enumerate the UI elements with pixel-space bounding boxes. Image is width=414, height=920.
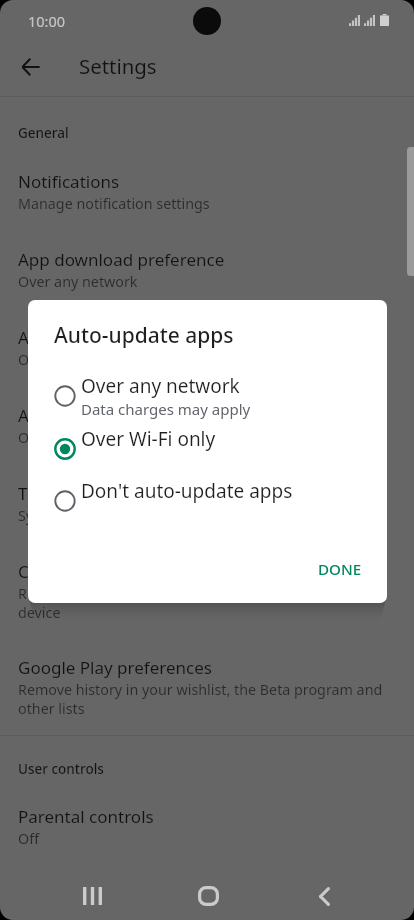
button[interactable]: Themes	[0, 465, 414, 543]
button[interactable]: Back	[300, 872, 348, 920]
staticText: Auto-update apps	[18, 326, 161, 349]
staticText: Themes	[18, 482, 82, 505]
staticText: Off	[18, 829, 40, 848]
staticText: User controls	[18, 760, 104, 778]
staticText: Over any network	[18, 272, 138, 291]
staticText: Don't auto-update apps	[81, 478, 293, 504]
button[interactable]: Auto-play videos	[0, 387, 414, 465]
staticText: 10:00	[28, 11, 66, 31]
staticText: Remove searches you've made on this devi…	[18, 584, 274, 622]
staticText: System default	[18, 506, 118, 525]
button[interactable]: Back	[7, 43, 54, 90]
staticText: Over Wi-Fi only	[81, 426, 216, 452]
staticText: Notifications	[18, 170, 120, 193]
button[interactable]: App download preference	[0, 231, 414, 309]
staticText: Over Wi-Fi only	[18, 350, 119, 369]
staticText: Remove history in your wishlist, the Bet…	[18, 680, 383, 718]
button[interactable]: DONE	[302, 549, 378, 590]
staticText: DONE	[318, 559, 362, 580]
staticText: Google Play preferences	[18, 656, 212, 679]
staticText: Auto-update apps	[54, 321, 234, 350]
staticText: App download preference	[18, 248, 225, 271]
staticText: Manage notification settings	[18, 194, 210, 213]
button[interactable]: Parental controls	[0, 778, 414, 866]
button[interactable]: Notifications	[0, 142, 414, 231]
staticText: Auto-play videos	[18, 404, 151, 427]
staticText: Over Wi-Fi only	[18, 428, 119, 447]
button[interactable]: Don't auto-update apps	[28, 476, 387, 528]
staticText: Over any network	[81, 373, 240, 399]
staticText: Parental controls	[18, 805, 154, 828]
staticText: Data charges may apply	[81, 399, 251, 419]
button[interactable]: Google Play preferences	[0, 640, 414, 736]
staticText: Clear local search history	[18, 560, 218, 583]
button[interactable]: Auto-update apps	[0, 309, 414, 387]
button[interactable]: Over any network	[28, 371, 387, 424]
button[interactable]: Recent apps	[68, 872, 116, 920]
button[interactable]: Clear local search history	[0, 543, 414, 640]
button[interactable]: Home	[184, 872, 232, 920]
button[interactable]: Over Wi-Fi only	[28, 424, 387, 476]
staticText: Settings	[79, 52, 157, 80]
staticText: General	[18, 124, 69, 142]
